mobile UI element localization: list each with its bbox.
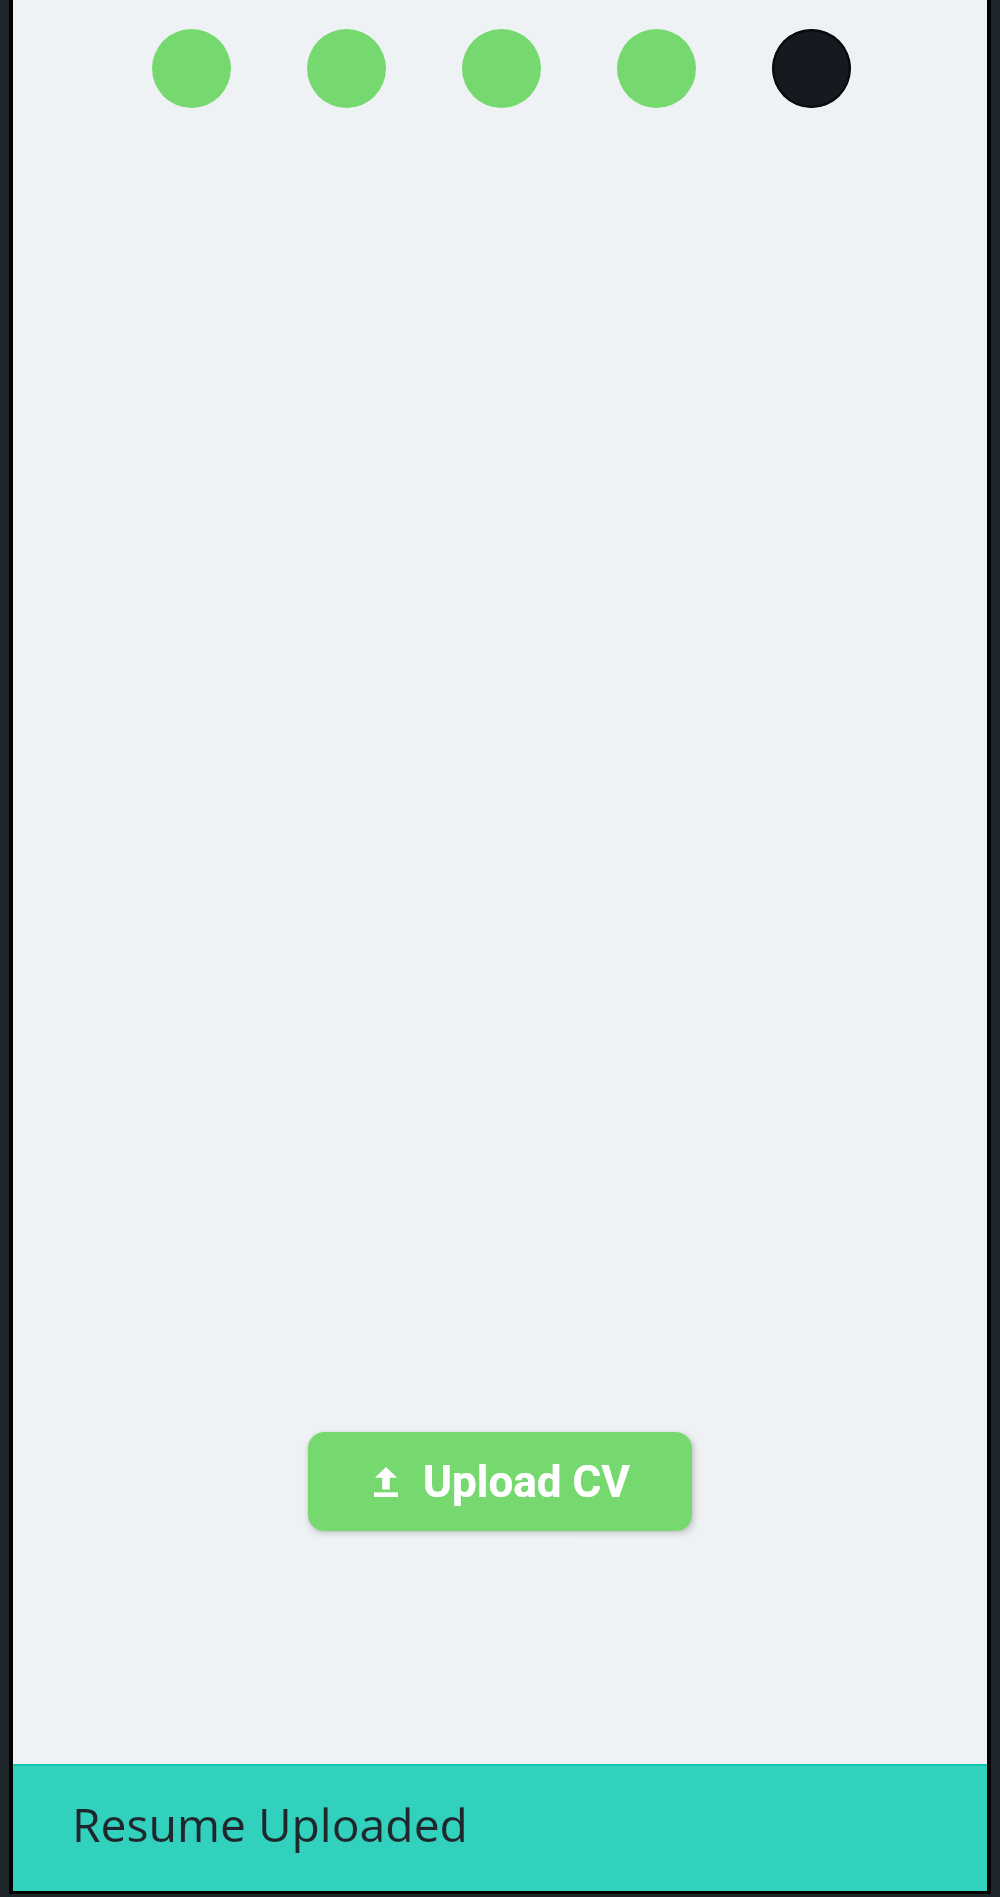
button[interactable]: Upload CV <box>308 1432 692 1531</box>
button[interactable]: Step 3 complete <box>462 29 541 108</box>
staticText: Resume Uploaded <box>72 1793 468 1856</box>
button[interactable]: Step 4 complete <box>617 29 696 108</box>
button[interactable]: Step 5, current <box>772 29 851 108</box>
button[interactable]: Step 1 complete <box>152 29 231 108</box>
staticText: Upload CV <box>423 1456 631 1508</box>
button[interactable]: Resume Uploaded <box>13 1764 987 1891</box>
button[interactable]: Step 2 complete <box>307 29 386 108</box>
